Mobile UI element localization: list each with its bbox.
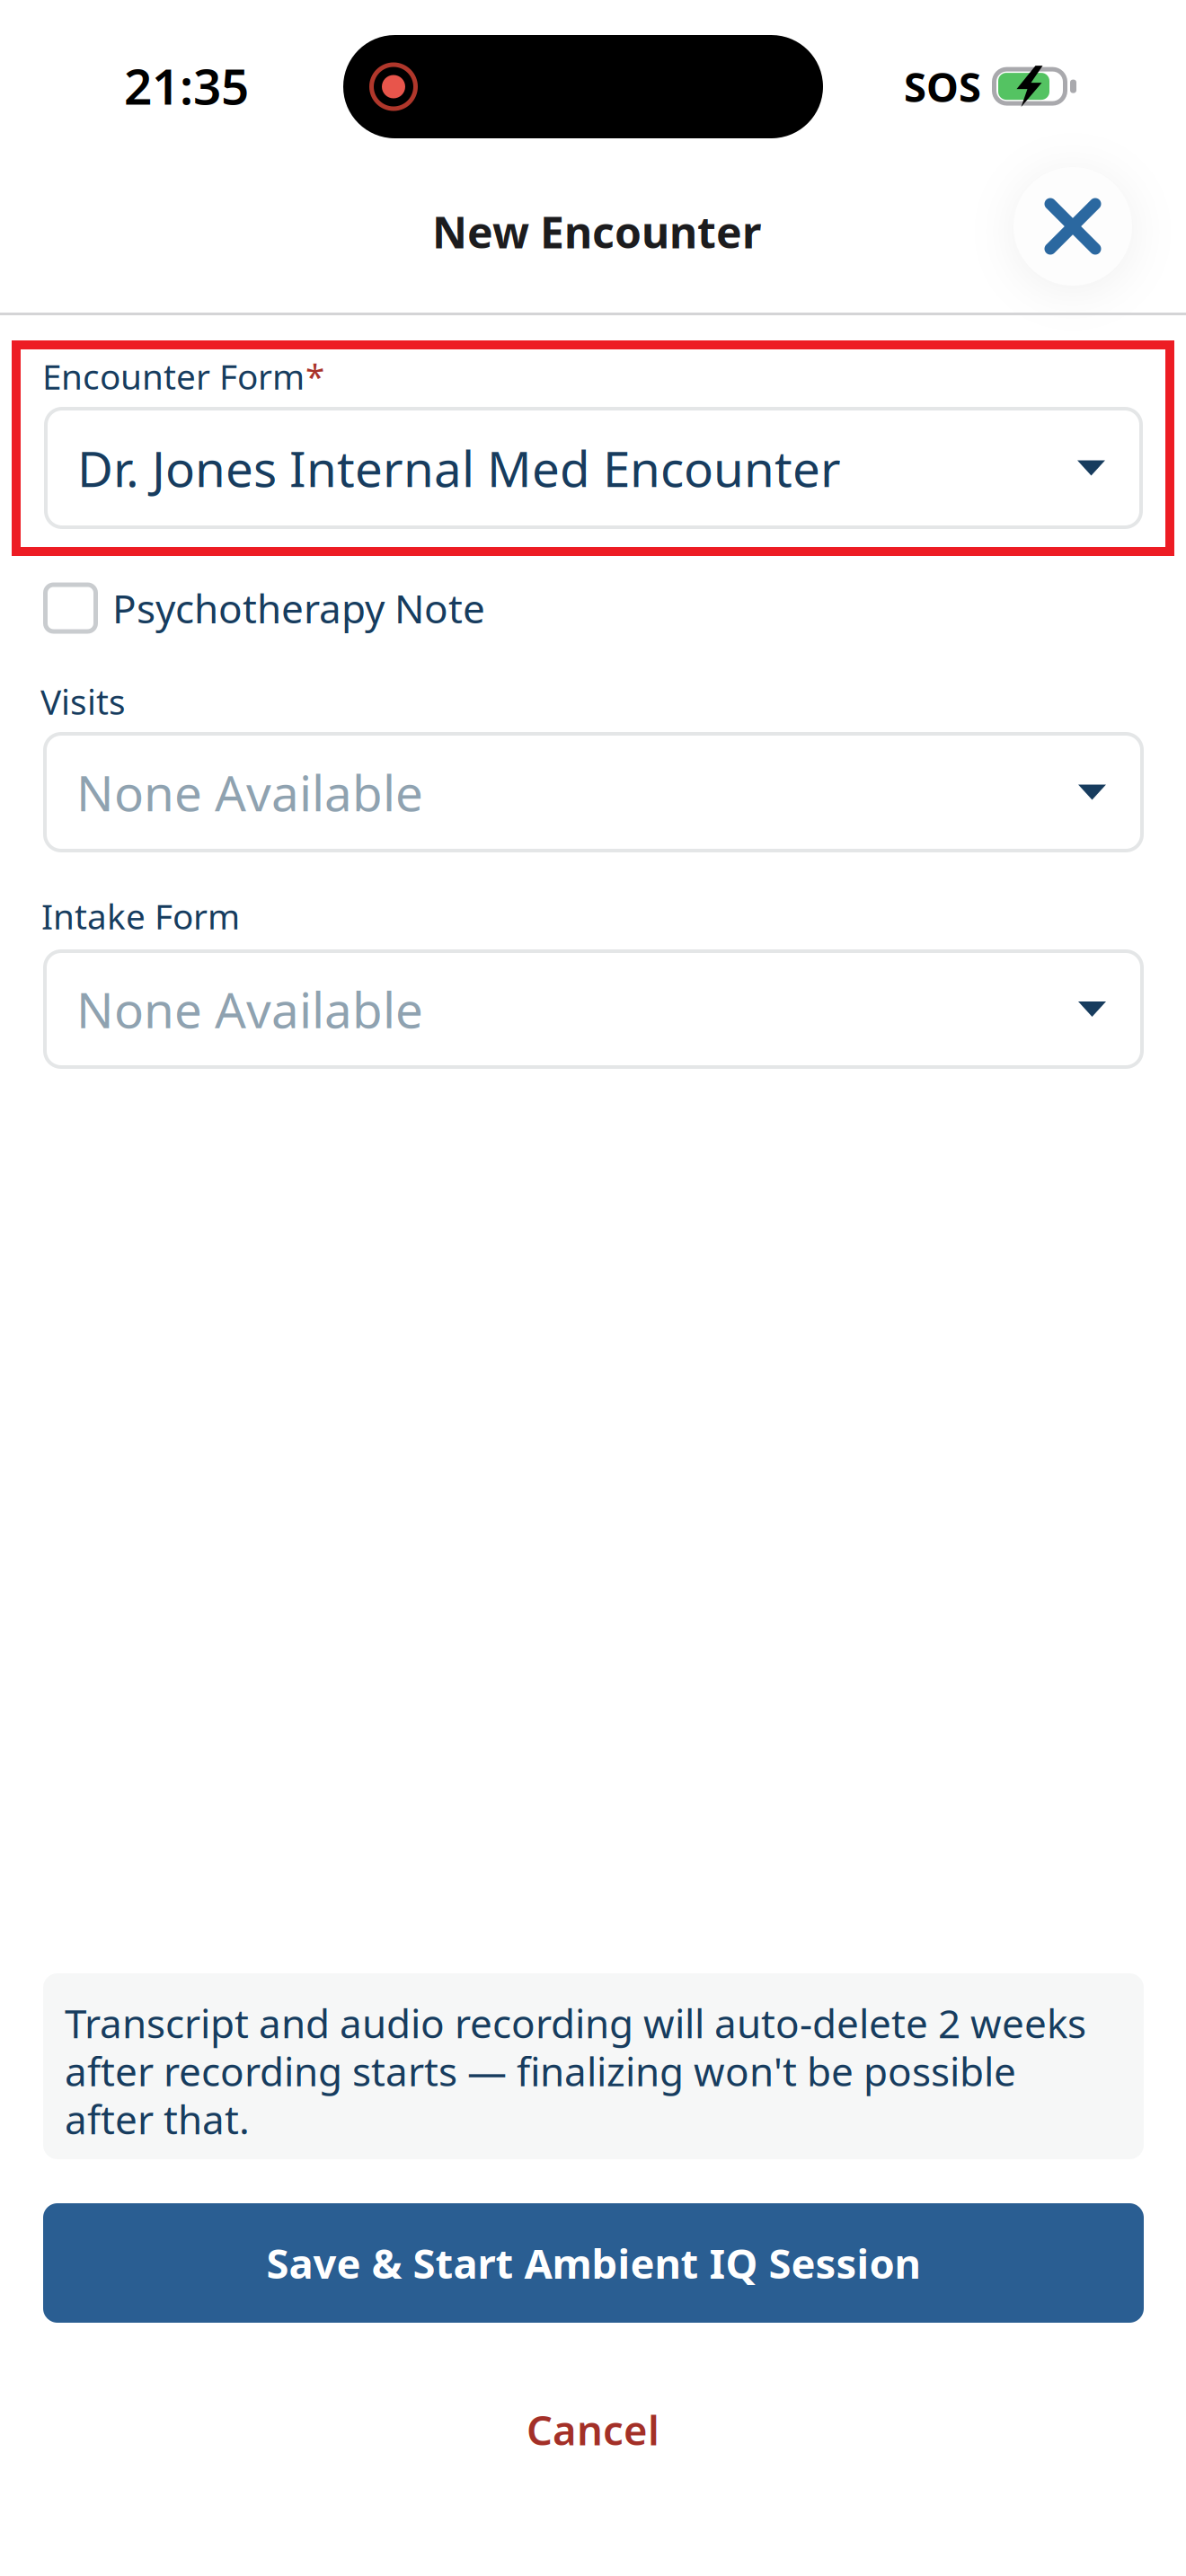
staticText: Transcript and audio recording will auto… — [65, 1997, 1086, 2049]
staticText: 21:35 — [124, 53, 249, 118]
button[interactable]: None Available — [43, 949, 1144, 1069]
staticText: Encounter Form — [42, 353, 305, 399]
button[interactable]: Close — [992, 146, 1154, 307]
staticText: New Encounter — [432, 203, 761, 260]
staticText: SOS — [904, 59, 981, 113]
button[interactable]: Psychotherapy Note — [43, 580, 582, 636]
staticText: None Available — [76, 977, 423, 1042]
staticText: Save & Start Ambient IQ Session — [266, 2236, 920, 2290]
staticText: None Available — [76, 760, 423, 825]
staticText: Psychotherapy Note — [112, 582, 485, 634]
staticText: Dr. Jones Internal Med Encounter — [77, 435, 841, 501]
staticText: after recording starts — finalizing won'… — [65, 2045, 1016, 2097]
button[interactable]: Cancel — [0, 2385, 1186, 2475]
staticText: * — [305, 353, 324, 399]
button[interactable]: None Available — [43, 732, 1144, 852]
staticText: Cancel — [527, 2403, 659, 2457]
staticText: Intake Form — [41, 893, 240, 939]
button[interactable]: Dr. Jones Internal Med Encounter — [44, 407, 1143, 529]
staticText: Visits — [40, 678, 126, 724]
staticText: after that. — [65, 2093, 250, 2145]
button[interactable]: Save & Start Ambient IQ Session — [43, 2203, 1144, 2323]
